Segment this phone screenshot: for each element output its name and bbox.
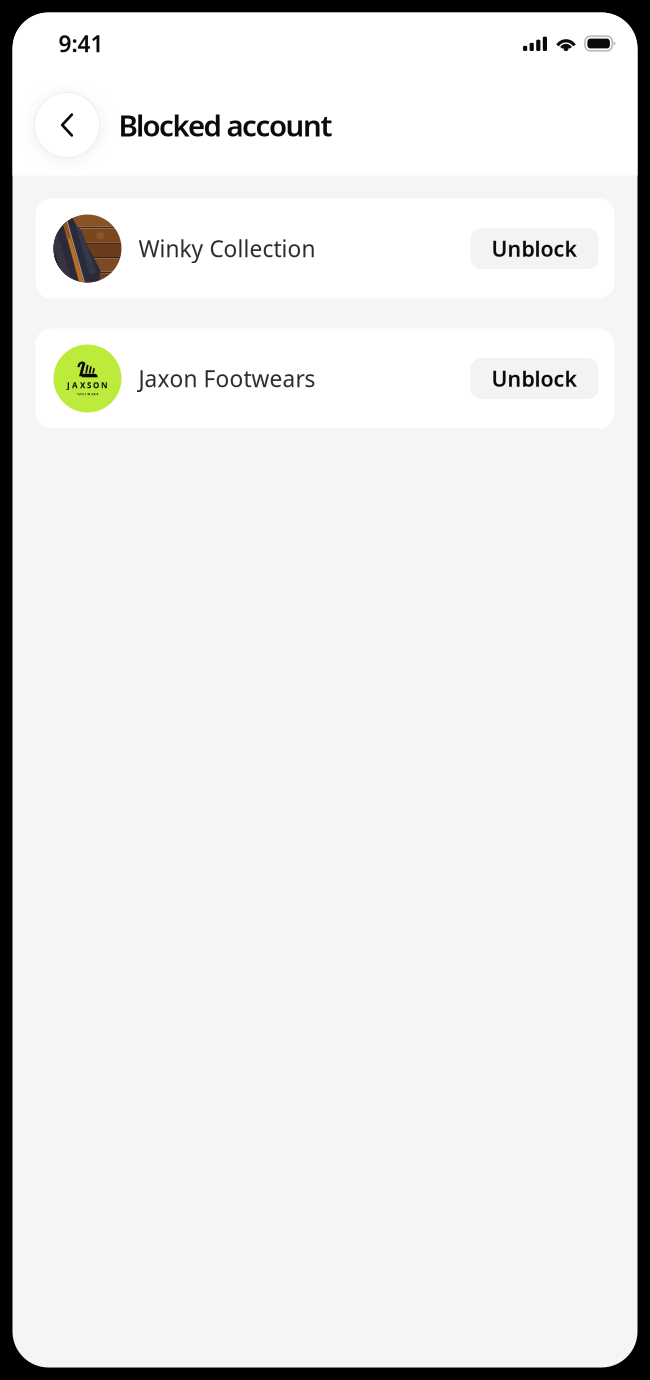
staticText: Winky Collection: [138, 233, 315, 263]
staticText: F O O T W E A R: [76, 392, 98, 396]
staticText: 9:41: [58, 28, 103, 58]
button[interactable]: Back: [34, 92, 99, 157]
staticText: Unblock: [491, 364, 577, 393]
staticText: Unblock: [491, 234, 577, 263]
staticText: Blocked account: [118, 105, 332, 144]
button[interactable]: Unblock: [470, 358, 598, 399]
staticText: J A X S O N: [67, 380, 108, 390]
button[interactable]: Unblock: [470, 228, 598, 269]
staticText: Jaxon Footwears: [138, 363, 315, 393]
